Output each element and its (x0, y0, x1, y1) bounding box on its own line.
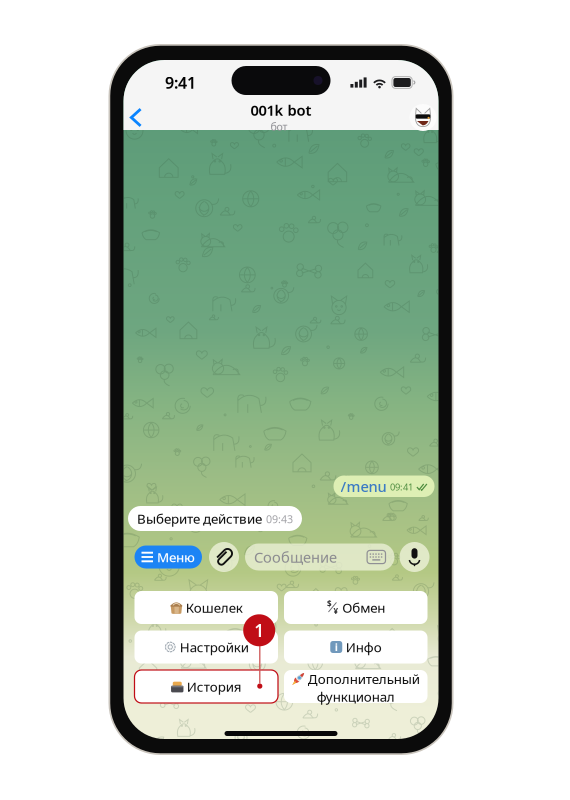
button[interactable]: $ (284, 591, 427, 624)
staticText: бот (270, 119, 287, 134)
button[interactable]: Back (125, 98, 147, 128)
staticText: 001k bot (250, 100, 311, 120)
staticText: Инфо (346, 638, 382, 656)
button[interactable]: i (284, 630, 427, 663)
staticText: Сообщение (254, 547, 337, 567)
staticText: Выберите действие (137, 510, 262, 527)
staticText: Дополнительный (308, 670, 420, 688)
staticText: 9:41 (165, 72, 196, 93)
staticText: 09:41 (390, 481, 413, 493)
button[interactable]: Keyboard (367, 550, 385, 564)
button[interactable]: Кошелек (134, 591, 278, 624)
staticText: Обмен (342, 599, 385, 616)
staticText: 09:43 (266, 512, 293, 526)
staticText: Кошелек (186, 599, 243, 616)
staticText: $ (327, 599, 332, 609)
button[interactable]: Chat info (409, 100, 436, 127)
staticText: функционал (317, 688, 395, 705)
staticText: ¥ (333, 606, 338, 616)
staticText: Настройки (180, 638, 249, 656)
staticText: /menu (340, 476, 386, 496)
button[interactable]: История (134, 670, 278, 703)
button[interactable]: Attach (209, 542, 239, 572)
staticText: i (335, 640, 338, 654)
staticText: История (187, 678, 242, 695)
staticText: Меню (157, 548, 195, 566)
button[interactable]: Voice message (399, 542, 429, 572)
button[interactable]: Настройки (134, 630, 278, 663)
button[interactable]: Дополнительный (284, 670, 427, 703)
staticText: 1 (254, 619, 264, 642)
button[interactable]: Меню (134, 545, 202, 568)
